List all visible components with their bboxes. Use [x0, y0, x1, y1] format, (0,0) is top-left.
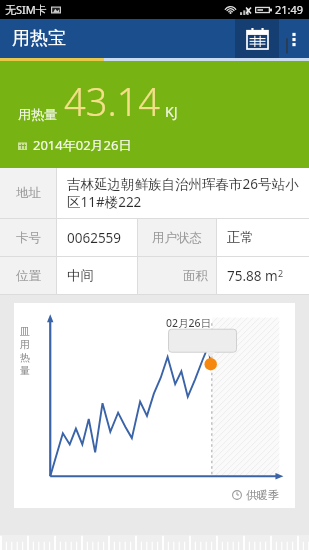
staticText: 卡号 [16, 230, 41, 246]
staticText: 正常 [227, 229, 254, 246]
staticText: 0062559 [67, 229, 122, 247]
staticText: 用热宝 [12, 27, 66, 50]
staticText: 用 [20, 338, 30, 351]
staticText: 皿 [20, 325, 30, 338]
button[interactable]: More options [279, 19, 309, 58]
staticText: 吉林延边朝鲜族自治州珲春市26号站小区11#楼222 [67, 175, 303, 211]
staticText: 无SIM卡 [5, 2, 47, 17]
staticText: 热 [20, 351, 30, 364]
staticText: 21:49 [275, 2, 304, 17]
button[interactable]: 皿 [14, 303, 295, 508]
staticText: 2014年02月26日 [33, 136, 132, 154]
button[interactable]: Calendar [235, 19, 279, 58]
staticText: 位置 [16, 268, 41, 284]
staticText: 中间 [67, 267, 94, 284]
staticText: 面积 [183, 268, 208, 284]
staticText: 2 [278, 267, 284, 279]
staticText: 02月26日 [166, 316, 212, 330]
staticText: 地址 [16, 185, 41, 201]
staticText: KJ [165, 102, 178, 121]
staticText: 43.14 [64, 75, 161, 127]
staticText: 量 [20, 364, 30, 377]
staticText: 用热量 [18, 106, 57, 122]
staticText: 75.88 m [227, 267, 278, 285]
staticText: 用户状态 [152, 230, 202, 246]
staticText: 供暖季 [246, 488, 279, 502]
